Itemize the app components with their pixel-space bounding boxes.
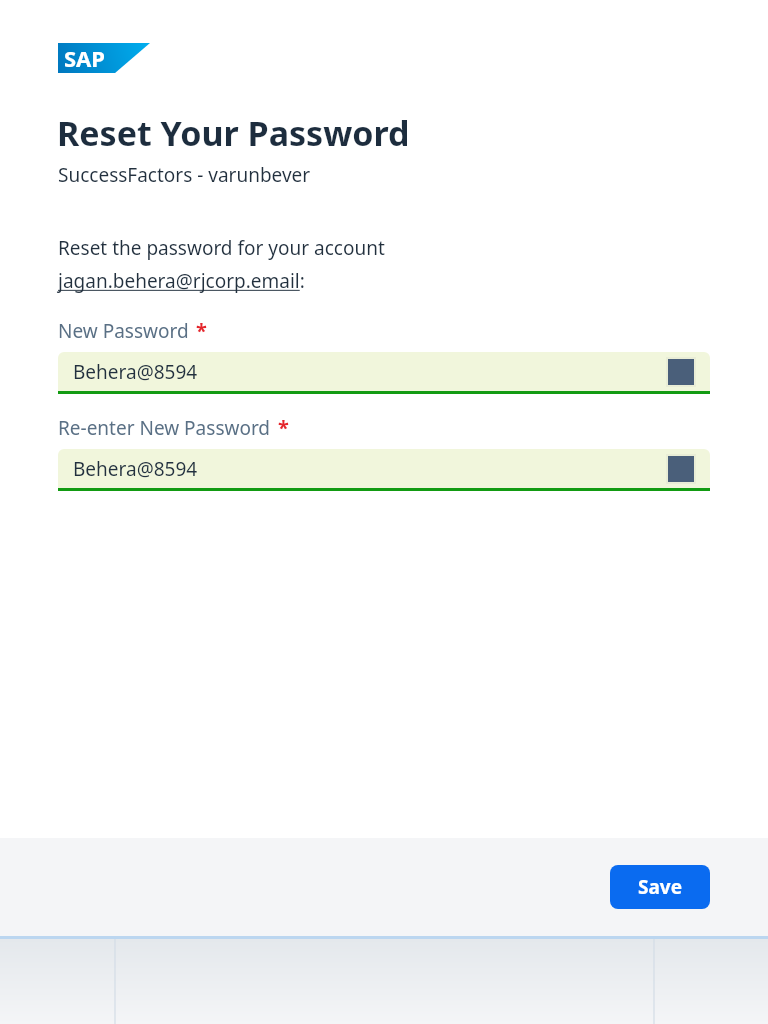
staticText: SuccessFactors - varunbever: [58, 162, 311, 188]
staticText: Reset Your Password: [57, 110, 410, 156]
other: SAP: [58, 43, 150, 73]
staticText: Behera@8594: [73, 359, 198, 385]
button[interactable]: Save: [610, 865, 710, 909]
staticText: *: [196, 317, 207, 344]
staticText: jagan.behera@rjcorp.email:: [58, 268, 305, 294]
staticText: *: [278, 414, 289, 441]
staticText: Reset the password for your account: [58, 235, 385, 261]
button[interactable]: Behera@8594: [58, 449, 710, 488]
staticText: New Password: [58, 318, 189, 344]
button[interactable]: Behera@8594: [58, 352, 710, 391]
staticText: Re-enter New Password: [58, 415, 271, 441]
staticText: Behera@8594: [73, 456, 198, 482]
staticText: Save: [638, 874, 683, 900]
staticText: SAP: [64, 43, 106, 73]
